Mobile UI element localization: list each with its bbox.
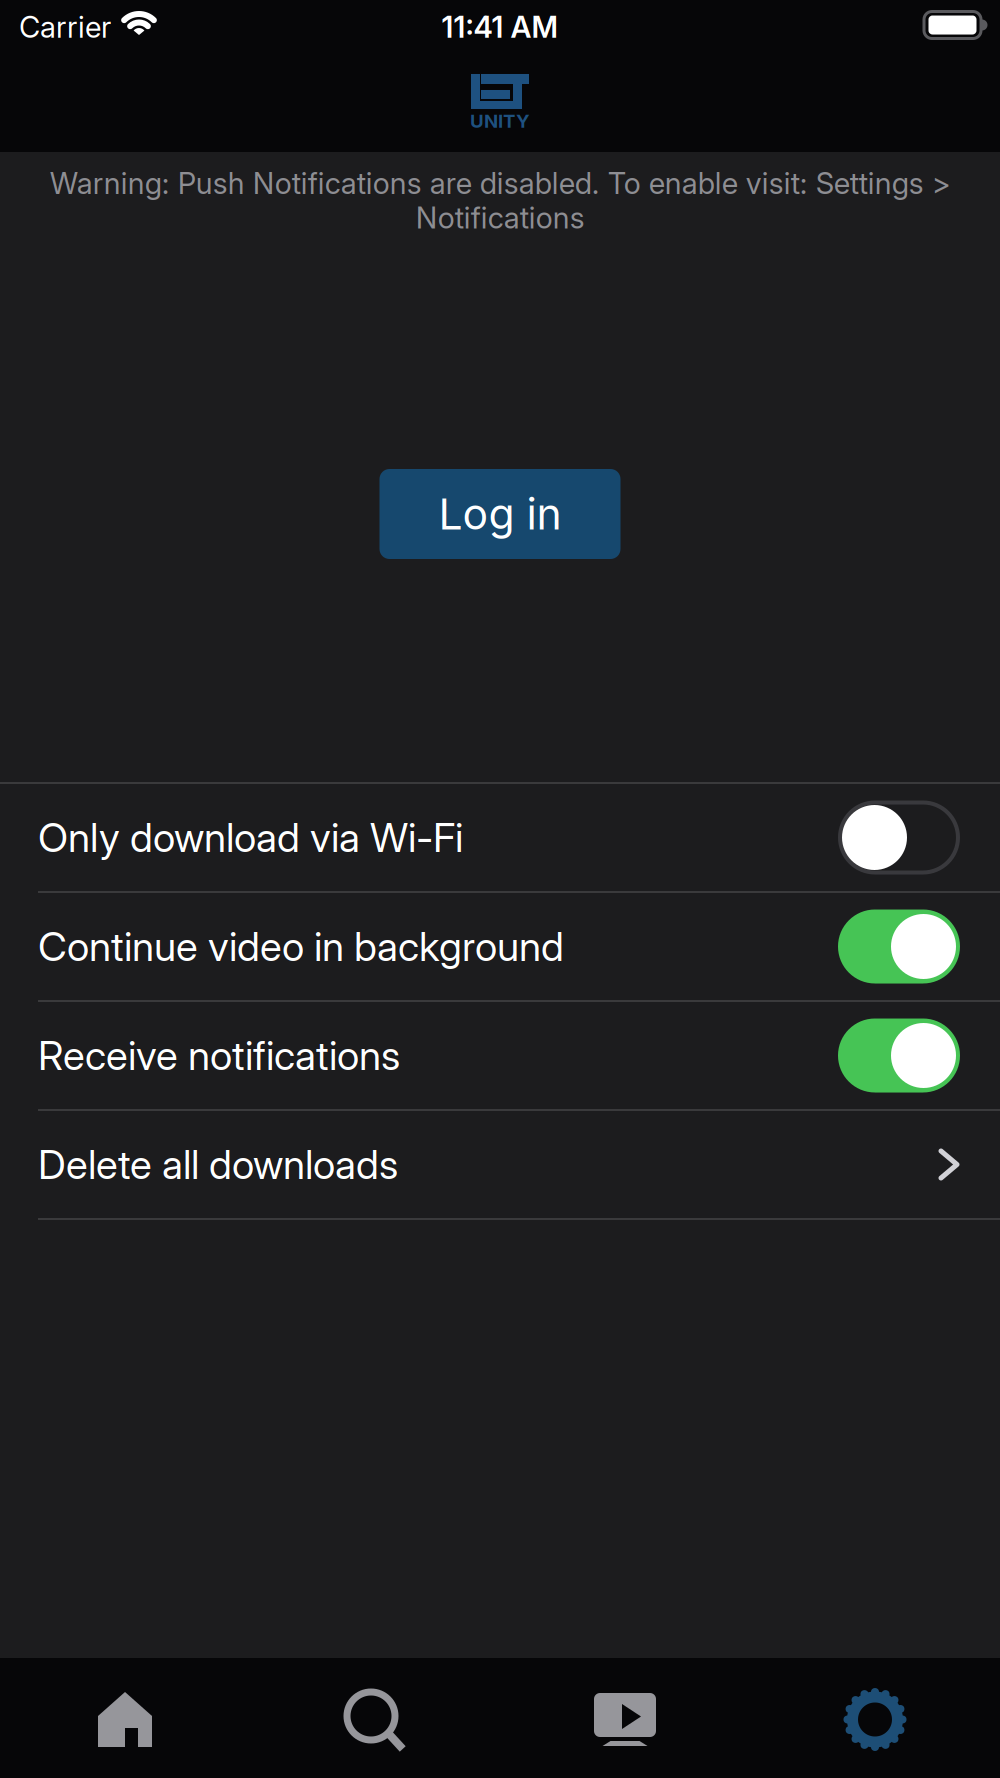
button[interactable]: Home (0, 1661, 250, 1778)
button[interactable]: Receive notifications (838, 1018, 960, 1092)
staticText: Log in (438, 489, 561, 539)
button[interactable]: Search (250, 1661, 500, 1778)
button[interactable]: Delete all downloads (0, 1111, 1000, 1220)
staticText: Delete all downloads (38, 1141, 398, 1188)
staticText: UNITY (470, 110, 530, 132)
staticText: 11:41 AM (441, 10, 558, 44)
staticText: Warning: Push Notifications are disabled… (49, 166, 950, 235)
button[interactable]: Settings (750, 1661, 1000, 1778)
button[interactable]: Videos (500, 1661, 750, 1778)
staticText: Carrier (19, 10, 111, 44)
staticText: Continue video in background (38, 923, 564, 970)
staticText: Only download via Wi-Fi (38, 814, 463, 861)
button[interactable]: Log in (379, 469, 620, 559)
button[interactable]: Only download via Wi-Fi (838, 800, 960, 874)
staticText: Receive notifications (38, 1032, 400, 1079)
button[interactable]: Continue video in background (838, 909, 960, 983)
